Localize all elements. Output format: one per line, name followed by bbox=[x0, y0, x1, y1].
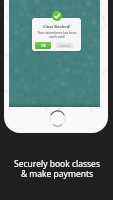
staticText: Securely book classes & make payments bbox=[14, 158, 100, 180]
other: Confirmed bbox=[52, 11, 62, 21]
staticText: OK bbox=[41, 43, 46, 48]
staticText: Class Booked! bbox=[43, 24, 71, 29]
button[interactable]: Cancel bbox=[56, 42, 73, 48]
button[interactable]: Home bbox=[49, 110, 66, 127]
button[interactable]: OK bbox=[35, 42, 51, 49]
staticText: Cancel bbox=[59, 43, 70, 48]
staticText: Your attendance has been confirmed! bbox=[37, 31, 77, 39]
